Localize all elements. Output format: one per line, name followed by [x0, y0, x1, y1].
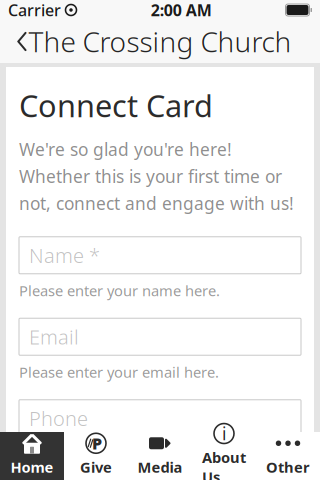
staticText: Email — [29, 323, 79, 350]
staticText: Connect Card — [19, 85, 213, 126]
button[interactable]: Other — [256, 432, 320, 480]
staticText: The Crossing Church — [28, 23, 291, 60]
staticText: About Us — [202, 447, 246, 480]
button[interactable]: Name * — [19, 237, 301, 274]
button[interactable]: P — [64, 432, 128, 480]
button[interactable]: Phone — [19, 400, 301, 437]
button[interactable]: Media — [128, 432, 192, 480]
staticText: Carrier — [8, 0, 61, 21]
staticText: Give — [80, 457, 112, 477]
staticText: Please enter your email here. — [19, 362, 219, 382]
button[interactable]: Back — [0, 20, 44, 63]
staticText: Please enter your phone number here. — [19, 444, 284, 463]
button[interactable]: Email — [19, 318, 301, 355]
button[interactable]: i — [192, 432, 256, 480]
staticText: Media — [137, 457, 182, 477]
staticText: Home — [10, 457, 53, 477]
staticText: We're so glad you're here! Whether this … — [19, 138, 294, 215]
staticText: Other — [266, 457, 310, 477]
staticText: Phone — [29, 405, 88, 432]
staticText: Name * — [29, 242, 100, 269]
staticText: i — [222, 422, 226, 445]
button[interactable]: Home — [0, 432, 64, 480]
staticText: 2:00 AM — [151, 0, 212, 21]
staticText: P — [92, 433, 102, 454]
staticText: Please enter your name here. — [19, 281, 220, 300]
